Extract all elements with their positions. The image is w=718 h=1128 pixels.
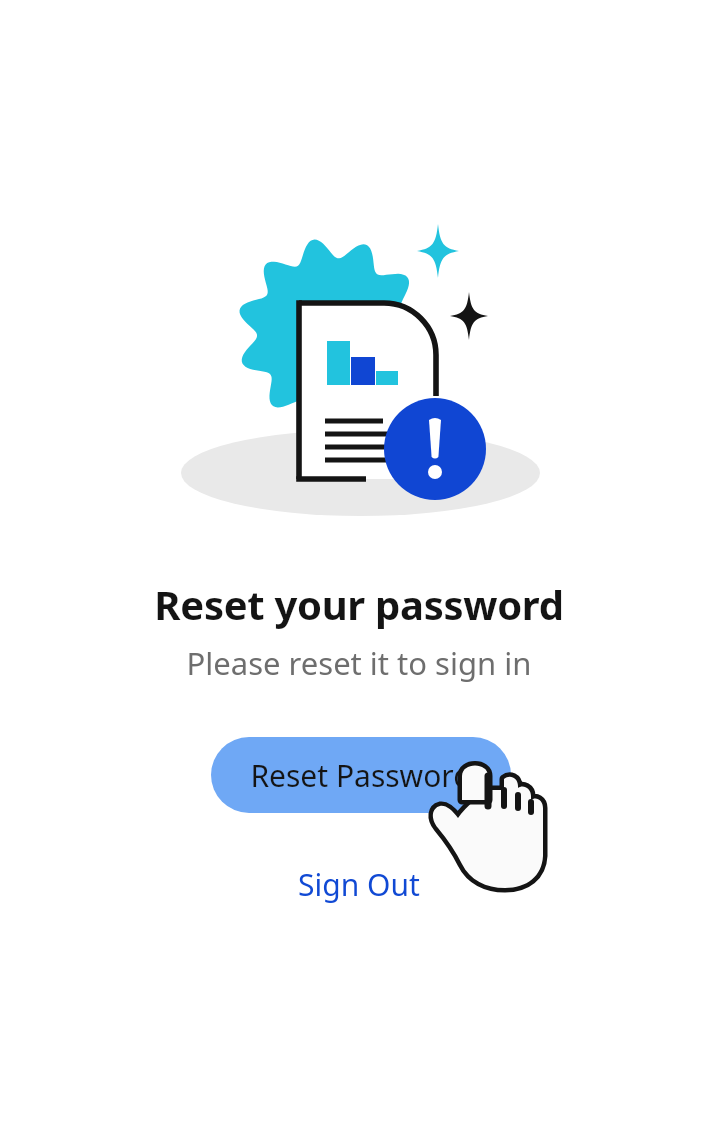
button[interactable]: Reset Password [211,737,511,813]
button[interactable]: Sign Out [298,864,420,905]
staticText: Reset your password [0,577,718,631]
staticText: Please reset it to sign in [0,642,718,684]
staticText: Reset Password [250,755,472,796]
other: Tap pointer [0,0,718,1128]
staticText: Sign Out [298,864,420,905]
